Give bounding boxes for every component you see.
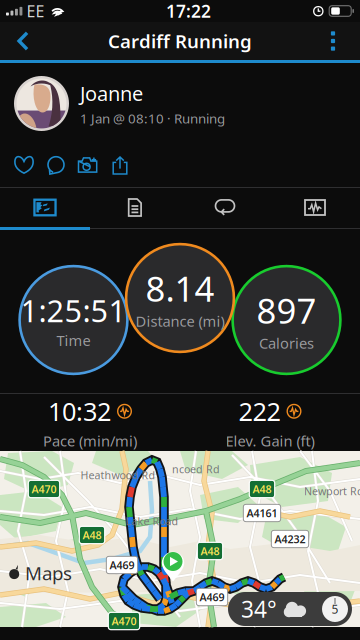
staticText: 10:32 xyxy=(48,394,111,428)
staticText: Joanne xyxy=(80,80,143,106)
button[interactable]: Share xyxy=(104,146,136,184)
staticText: Lake Road xyxy=(125,514,178,528)
staticText: Time xyxy=(56,331,90,350)
button[interactable]: Details xyxy=(90,187,180,227)
button[interactable]: Back xyxy=(0,22,46,60)
staticText: A469 xyxy=(109,558,134,572)
staticText: A48 xyxy=(82,528,101,542)
staticText: A469 xyxy=(199,590,224,604)
staticText: 1:25:51 xyxy=(20,290,126,331)
staticText: A41 xyxy=(240,600,259,614)
staticText: Maps xyxy=(25,561,72,585)
button[interactable]: Map xyxy=(0,187,90,227)
staticText: ncoed Rd xyxy=(172,462,220,476)
staticText: 17:22 xyxy=(166,0,211,22)
button[interactable]: More options xyxy=(306,22,360,60)
staticText: A4232 xyxy=(274,532,305,546)
button[interactable]: Add photo xyxy=(72,146,104,184)
staticText: 222 xyxy=(238,394,280,428)
staticText: A4161 xyxy=(246,506,277,520)
staticText: Newport Rd xyxy=(304,484,360,498)
staticText: 8.14 xyxy=(145,265,214,311)
staticText: Pace (min/mi) xyxy=(43,431,137,451)
staticText: A470 xyxy=(31,482,56,496)
button[interactable]: Charts xyxy=(270,187,360,227)
staticText: A48 xyxy=(200,544,219,558)
staticText: 34° xyxy=(241,594,277,624)
staticText: A470 xyxy=(111,614,136,628)
button[interactable]: Comment xyxy=(40,146,72,184)
button[interactable]: Laps xyxy=(180,187,270,227)
staticText: Heathwood Rd xyxy=(80,468,155,482)
staticText: 1 Jan @ 08:10 · Running xyxy=(80,109,225,127)
button[interactable]: Like xyxy=(8,146,40,184)
staticText: 897 xyxy=(256,287,316,333)
staticText: 5 xyxy=(331,601,338,617)
staticText: A48 xyxy=(252,482,271,496)
staticText: EE xyxy=(26,0,44,22)
staticText: Cardiff Running xyxy=(108,29,252,53)
staticText: Calories xyxy=(259,333,314,353)
staticText: Distance (mi) xyxy=(135,311,224,331)
staticText: Elev. Gain (ft) xyxy=(225,431,314,451)
